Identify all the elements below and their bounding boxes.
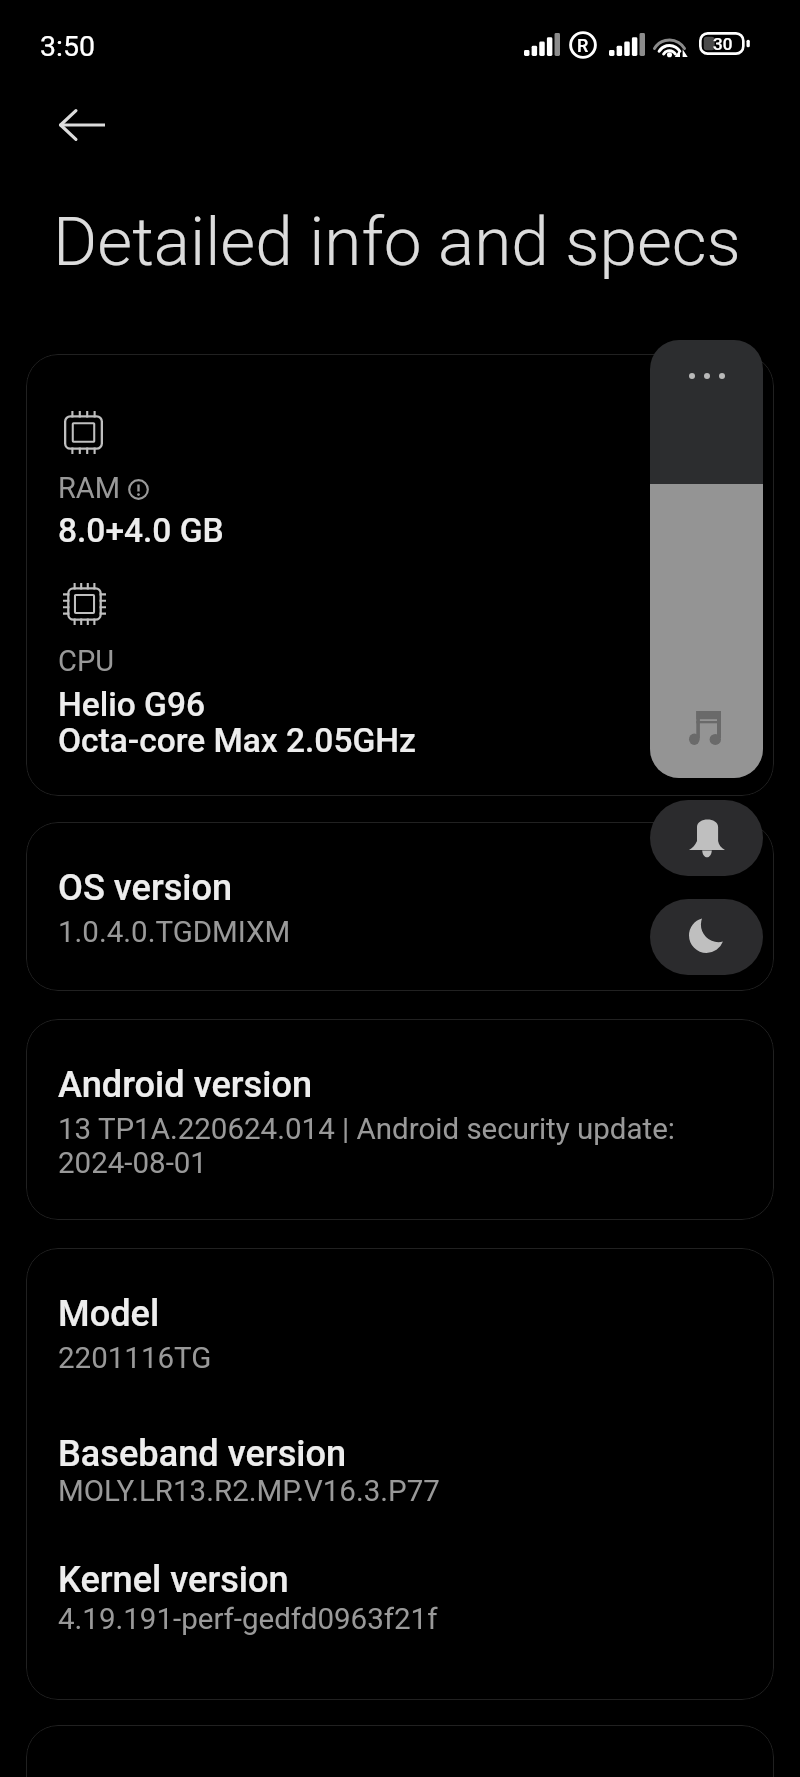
staticText: CPU [58,644,114,678]
staticText: 2201116TG [58,1341,212,1376]
staticText: Model [58,1292,160,1334]
staticText: Octa-core Max 2.05GHz [58,721,416,760]
button[interactable] [26,1725,774,1777]
staticText: 13 TP1A.220624.014 | Android security up… [58,1112,675,1180]
staticText: MOLY.LR13.R2.MP.V16.3.P77 [58,1474,440,1509]
button[interactable]: OS version [26,822,774,991]
button[interactable]: Model [26,1248,774,1700]
button[interactable]: Back [40,99,106,151]
staticText: Helio G96 [58,685,206,724]
staticText: 8.0+4.0 GB [58,511,224,550]
button[interactable]: Ring mode [650,800,763,876]
staticText: RAM [58,471,121,505]
staticText: 30 [713,34,733,54]
staticText: Baseband version [58,1432,347,1474]
staticText: 3:50 [40,30,95,63]
staticText: Detailed info and specs [53,202,741,281]
staticText: R [577,35,589,56]
button[interactable]: Media volume [650,340,763,778]
button[interactable]: Do not disturb [650,899,763,975]
staticText: OS version [58,866,233,908]
button[interactable]: RAM [26,354,774,796]
staticText: Android version [58,1063,313,1105]
staticText: 4.19.191-perf-gedfd0963f21f [58,1602,438,1637]
staticText: Kernel version [58,1558,289,1600]
button[interactable]: Android version [26,1019,774,1220]
staticText: 1.0.4.0.TGDMIXM [58,915,291,950]
